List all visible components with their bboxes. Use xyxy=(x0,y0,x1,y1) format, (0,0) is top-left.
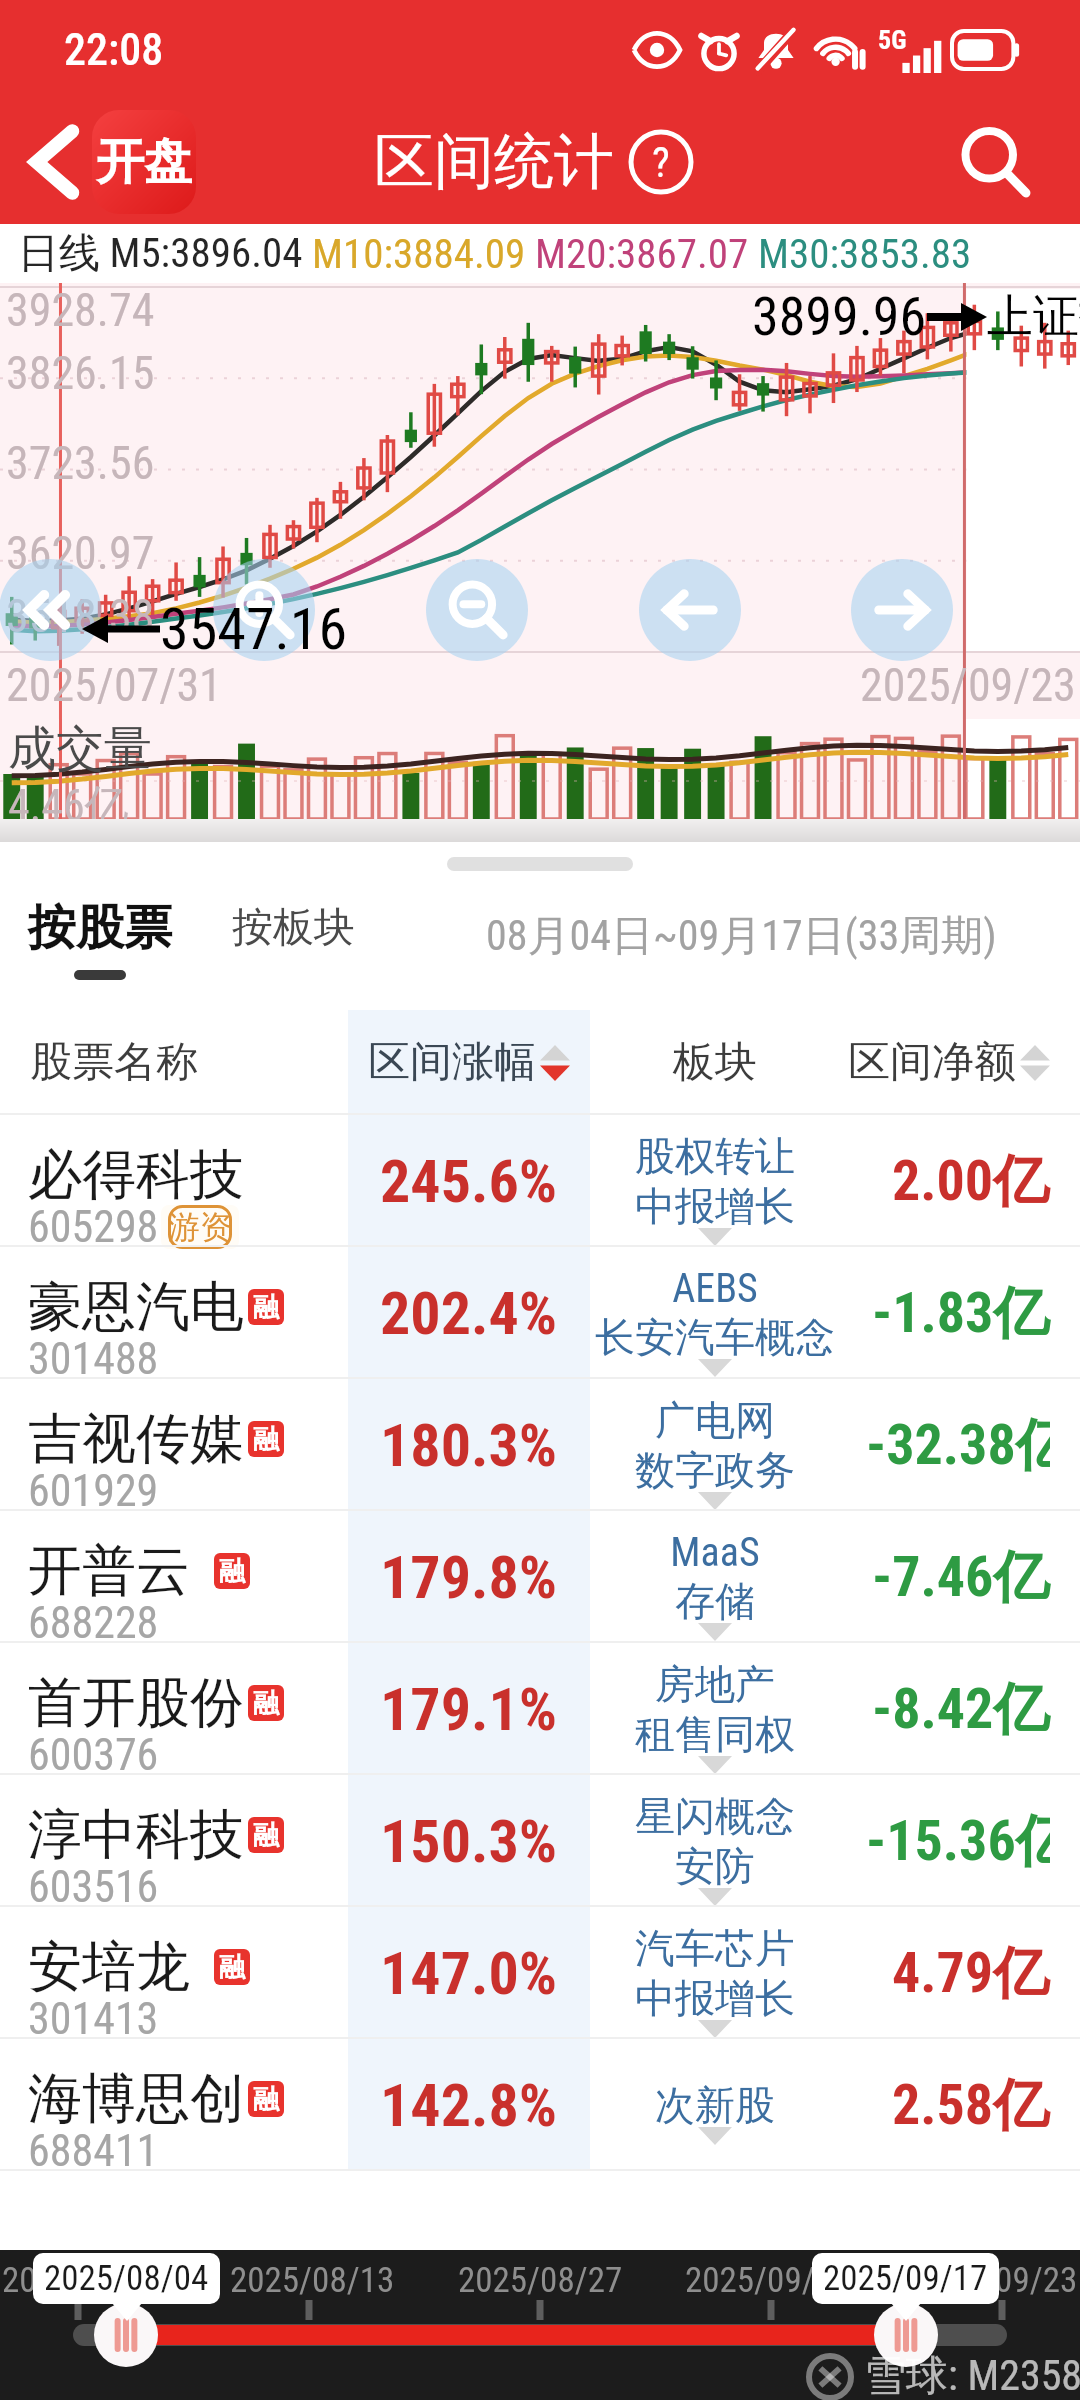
staticText: 2025/08/27 xyxy=(458,2260,623,2301)
staticText: 数字政务 xyxy=(635,1445,795,1495)
staticText: 2025/09/23 xyxy=(860,658,1076,712)
staticText: 688228 xyxy=(28,1597,159,1649)
staticText: 3928.74 xyxy=(6,283,155,337)
staticText: 3826.15 xyxy=(6,346,155,400)
staticText: 安培龙 xyxy=(28,1933,190,2001)
staticText: 次新股 xyxy=(655,2080,775,2130)
button[interactable]: 放大 xyxy=(213,559,315,661)
staticText: 股权转让 xyxy=(635,1131,795,1181)
staticText: 4.79亿 xyxy=(892,1938,1050,2009)
button[interactable]: 区间涨幅 xyxy=(348,1010,590,1115)
button[interactable]: 豪恩汽电 xyxy=(0,1247,1080,1379)
staticText: 2025/09/23 xyxy=(913,2260,1078,2301)
staticText: 202.4% xyxy=(380,1278,558,1348)
staticText: 雪球: M2358 xyxy=(864,2350,1080,2400)
button[interactable]: 搜索 xyxy=(950,117,1040,207)
staticText: -1.83亿 xyxy=(872,1278,1050,1349)
button[interactable]: 淳中科技 xyxy=(0,1775,1080,1907)
staticText: 603516 xyxy=(28,1861,159,1913)
staticText: 3723.56 xyxy=(6,436,155,490)
staticText: AEBS xyxy=(672,1265,758,1312)
button[interactable]: 必得科技 xyxy=(0,1115,1080,1247)
button[interactable]: 按板块 xyxy=(232,902,355,954)
staticText: 3518.38 xyxy=(6,589,155,643)
staticText: 广电网 xyxy=(655,1395,775,1445)
staticText: 142.8% xyxy=(380,2070,558,2140)
staticText: 淳中科技 xyxy=(28,1801,244,1869)
staticText: -7.46亿 xyxy=(872,1542,1050,1613)
staticText: 融 xyxy=(219,1555,245,1588)
staticText: M20:3867.07 xyxy=(535,230,758,278)
button[interactable]: 缩小到起点 xyxy=(0,559,101,661)
staticText: 海博思创 xyxy=(28,2065,244,2133)
staticText: 147.0% xyxy=(380,1938,558,2008)
staticText: 长安汽车概念 xyxy=(595,1312,835,1362)
button[interactable]: 开普云 xyxy=(0,1511,1080,1643)
button[interactable]: 返回 开盘 xyxy=(24,104,202,220)
staticText: 按股票 xyxy=(28,898,172,958)
staticText: 成交量 xyxy=(8,719,152,779)
staticText: 融 xyxy=(253,1819,279,1852)
staticText: 按板块 xyxy=(232,902,355,954)
staticText: 板块 xyxy=(673,1036,757,1089)
staticText: 3899.96 xyxy=(752,285,927,348)
staticText: 180.3% xyxy=(380,1410,558,1480)
button[interactable]: 安培龙 xyxy=(0,1907,1080,2039)
staticText: 179.8% xyxy=(380,1542,558,1612)
staticText: 150.3% xyxy=(380,1806,558,1876)
staticText: 245.6% xyxy=(380,1146,558,1216)
button[interactable]: 左移 xyxy=(639,559,741,661)
staticText: 游资 xyxy=(168,1207,232,1247)
button[interactable]: 拖动日期 xyxy=(94,2303,158,2367)
button[interactable]: 缩小 xyxy=(426,559,528,661)
staticText: 2.00亿 xyxy=(892,1146,1050,1217)
staticText: 安防 xyxy=(675,1841,755,1891)
staticText: 301488 xyxy=(28,1333,159,1385)
button[interactable]: 海博思创 xyxy=(0,2039,1080,2171)
staticText: 2025/08/04 xyxy=(44,2258,209,2299)
staticText: 179.1% xyxy=(380,1674,558,1744)
staticText: 区间净额 xyxy=(848,1036,1016,1089)
staticText: 2025/09/17 xyxy=(823,2258,988,2299)
button[interactable]: 吉视传媒 xyxy=(0,1379,1080,1511)
staticText: 必得科技 xyxy=(28,1141,244,1209)
staticText: 吉视传媒 xyxy=(28,1405,244,1473)
staticText: ? xyxy=(652,138,670,187)
staticText: 开普云 xyxy=(28,1537,190,1605)
staticText: 2025/07/31 xyxy=(2,2260,167,2301)
staticText: 2025/09/09 xyxy=(685,2260,850,2301)
button[interactable]: 帮助 xyxy=(628,129,694,195)
staticText: 豪恩汽电 xyxy=(28,1273,244,1341)
staticText: 融 xyxy=(253,1291,279,1324)
staticText: 开盘 xyxy=(96,132,192,192)
staticText: 601929 xyxy=(28,1465,159,1517)
staticText: 租售同权 xyxy=(635,1709,795,1759)
staticText: 2025/08/13 xyxy=(230,2260,395,2301)
staticText: 08月04日~09月17日(33周期) xyxy=(486,910,997,963)
staticText: 星闪概念 xyxy=(635,1791,795,1841)
button[interactable]: 区间净额 xyxy=(840,1036,1050,1089)
staticText: 605298 xyxy=(28,1201,159,1253)
button[interactable]: 按股票 xyxy=(28,898,172,980)
button[interactable]: 首开股份 xyxy=(0,1643,1080,1775)
staticText: 日线 M5:3896.04 xyxy=(18,228,312,280)
staticText: 汽车芯片 xyxy=(635,1923,795,1973)
staticText: -32.38亿 xyxy=(866,1410,1050,1481)
button[interactable]: 拖动日期 xyxy=(874,2303,938,2367)
staticText: 4.46亿 xyxy=(8,779,129,819)
staticText: 3620.97 xyxy=(6,526,155,580)
staticText: 区间统计 xyxy=(374,124,614,200)
staticText: 存储 xyxy=(675,1576,755,1626)
staticText: 22:08 xyxy=(64,24,164,76)
staticText: 融 xyxy=(253,1687,279,1720)
button[interactable]: 右移 xyxy=(851,559,953,661)
staticText: 首开股份 xyxy=(28,1669,244,1737)
staticText: M10:3884.09 xyxy=(312,230,535,278)
staticText: 600376 xyxy=(28,1729,159,1781)
staticText: -8.42亿 xyxy=(872,1674,1050,1745)
staticText: 3547.16 xyxy=(160,595,348,663)
staticText: -15.36亿 xyxy=(866,1806,1050,1877)
staticText: 中报增长 xyxy=(635,1973,795,2023)
staticText: 5G xyxy=(878,25,907,55)
staticText: 区间涨幅 xyxy=(368,1036,536,1089)
